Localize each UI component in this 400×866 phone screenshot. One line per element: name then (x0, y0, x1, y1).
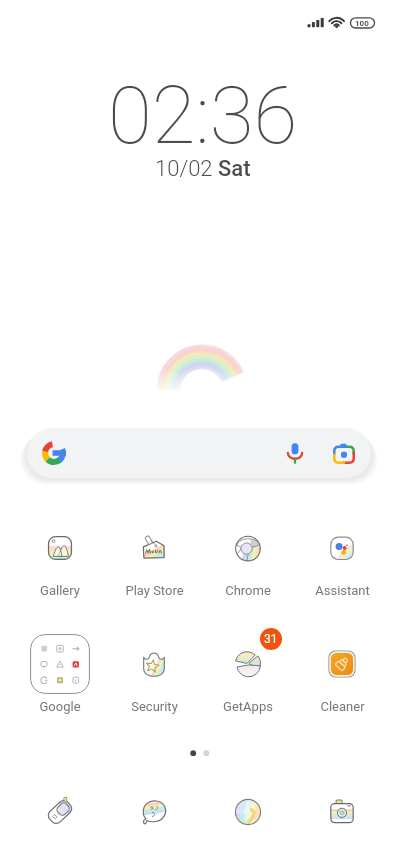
staticText: Gallery (40, 583, 80, 598)
staticText: Sat (218, 156, 251, 182)
staticText: GetApps (223, 699, 273, 714)
staticText: 31 (264, 632, 278, 646)
button[interactable]: Security (107, 630, 201, 714)
staticText: 02:36 (108, 69, 298, 163)
button[interactable]: Browser (220, 784, 276, 840)
staticText: Security (131, 699, 178, 714)
button[interactable]: Messages (126, 784, 182, 840)
button[interactable]: Voice search (27, 428, 371, 478)
staticText: Play Store (125, 583, 184, 598)
staticText: 10/02 (155, 156, 218, 182)
button[interactable]: Phone (32, 784, 88, 840)
staticText: Chrome (225, 583, 271, 598)
button[interactable]: Camera (314, 784, 370, 840)
button[interactable]: Chrome (201, 514, 295, 598)
staticText: Assistant (315, 583, 370, 598)
button[interactable]: 02:36 (3, 69, 400, 189)
staticText: Cleaner (320, 699, 365, 714)
button[interactable]: Assistant (295, 514, 389, 598)
staticText: 100 (355, 19, 369, 28)
button[interactable]: 31 (201, 630, 295, 714)
button[interactable]: Google Lens (327, 436, 361, 470)
button[interactable]: Gallery (13, 514, 107, 598)
button[interactable]: Google (13, 630, 107, 714)
button[interactable]: Cleaner (295, 630, 389, 714)
button[interactable]: Play Store (107, 514, 201, 598)
staticText: Google (39, 699, 81, 714)
button[interactable]: Voice search (278, 436, 312, 470)
